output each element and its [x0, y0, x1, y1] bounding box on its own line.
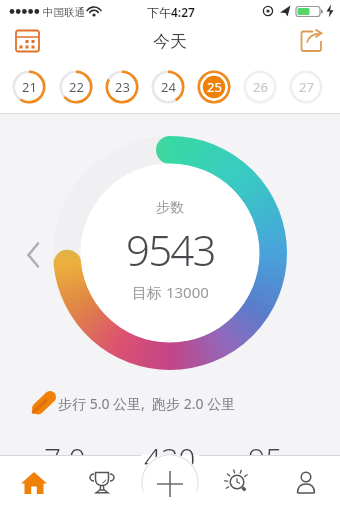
button[interactable]: 23: [99, 60, 145, 113]
staticText: 25: [207, 78, 222, 96]
button[interactable]: [290, 22, 334, 60]
staticText: 430: [144, 438, 196, 479]
staticText: 下午4:27: [147, 4, 195, 20]
button[interactable]: [204, 455, 272, 510]
button[interactable]: 26: [237, 60, 283, 113]
staticText: 今天: [153, 31, 187, 52]
staticText: 22: [69, 78, 84, 96]
staticText: 23: [115, 78, 130, 96]
button[interactable]: [0, 455, 68, 510]
button[interactable]: [272, 455, 340, 510]
staticText: 7.0: [44, 438, 86, 479]
staticText: 26: [253, 78, 268, 96]
staticText: 24: [161, 78, 176, 96]
staticText: 21: [22, 78, 37, 96]
button[interactable]: 22: [52, 60, 99, 113]
button[interactable]: [14, 239, 50, 273]
staticText: 步数: [156, 199, 184, 217]
staticText: 目标 13000: [132, 282, 209, 302]
staticText: 27: [299, 78, 314, 96]
button[interactable]: [68, 455, 136, 510]
button[interactable]: 24: [145, 60, 191, 113]
staticText: 中国联通: [43, 6, 85, 19]
button[interactable]: 27: [283, 60, 329, 113]
button[interactable]: [141, 454, 199, 509]
staticText: 步行 5.0 公里, 跑步 2.0 公里: [58, 394, 236, 413]
staticText: 9543: [126, 221, 215, 278]
button[interactable]: 21: [5, 60, 52, 113]
button[interactable]: 25: [191, 60, 237, 113]
staticText: 95: [248, 438, 283, 479]
button[interactable]: [6, 22, 50, 60]
